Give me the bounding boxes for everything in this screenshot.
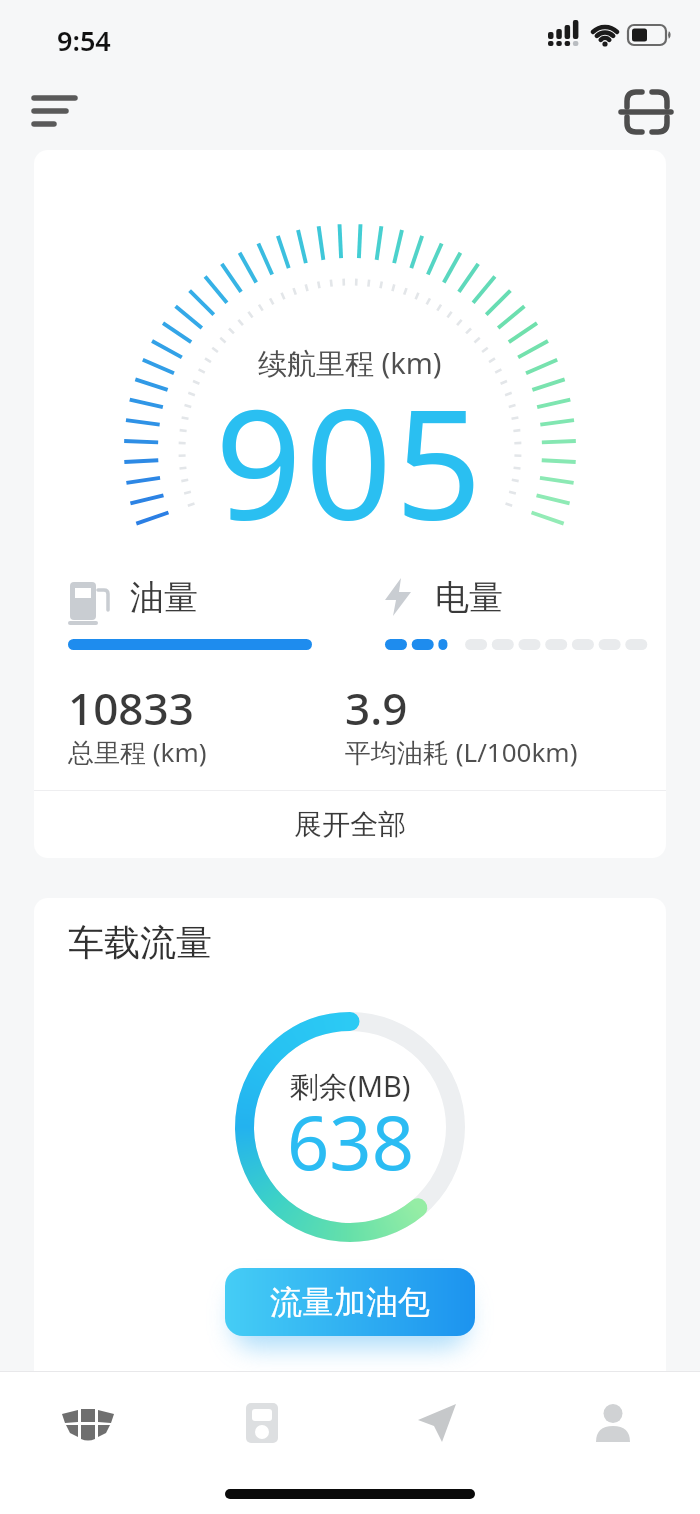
button[interactable] [24, 86, 84, 134]
button[interactable] [525, 1371, 700, 1477]
button[interactable] [175, 1371, 350, 1477]
staticText: 展开全部 [294, 807, 406, 842]
staticText: 电量 [435, 576, 503, 619]
button[interactable]: 流量加油包 [225, 1268, 475, 1336]
staticText: 总里程 (km) [68, 734, 207, 770]
staticText: 905 [215, 357, 485, 564]
button[interactable] [615, 84, 675, 136]
button[interactable]: 展开全部 [34, 791, 666, 858]
staticText: 流量加油包 [270, 1282, 430, 1322]
staticText: 平均油耗 (L/100km) [345, 734, 578, 770]
staticText: 油量 [130, 576, 198, 619]
staticText: 10833 [68, 678, 194, 738]
staticText: 638 [287, 1091, 414, 1192]
staticText: 3.9 [345, 678, 408, 738]
button[interactable] [350, 1371, 525, 1477]
staticText: 续航里程 (km) [258, 343, 442, 383]
button[interactable] [0, 1371, 175, 1477]
staticText: 9:54 [57, 22, 111, 59]
staticText: 剩余(MB) [290, 1066, 411, 1106]
staticText: 车载流量 [68, 920, 212, 965]
